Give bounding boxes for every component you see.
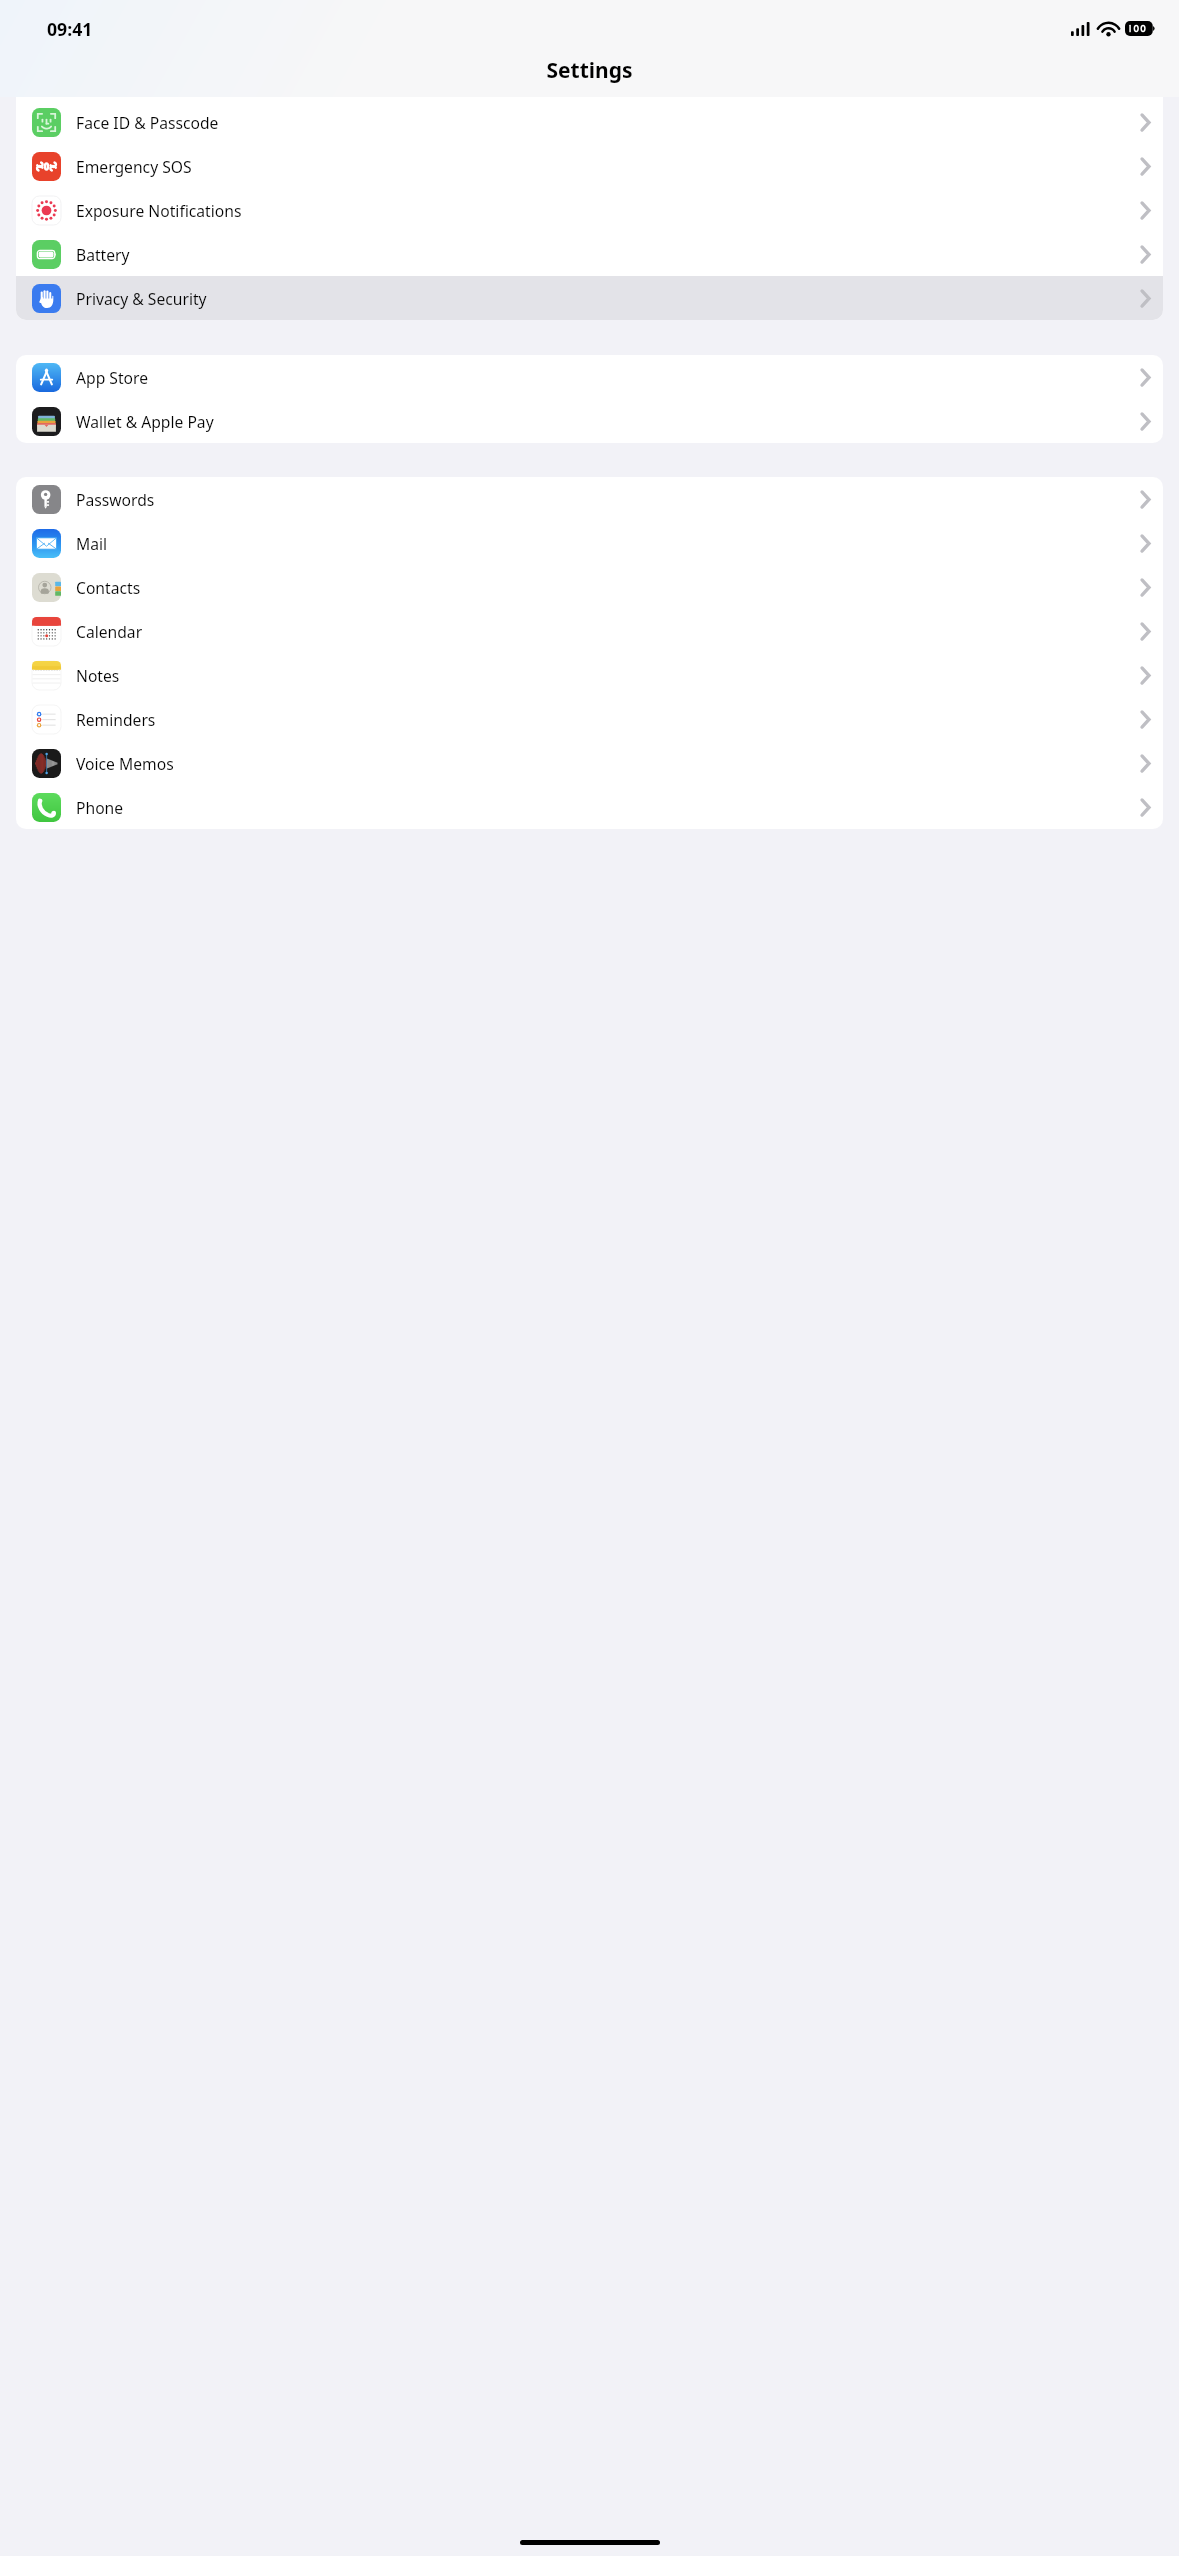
other: Exposure Notifications — [1140, 201, 1151, 220]
other: Privacy & Security — [1140, 289, 1151, 308]
staticText: Reminders — [76, 709, 156, 730]
staticText: Voice Memos — [76, 753, 174, 774]
button[interactable]: Privacy & Security — [16, 276, 1163, 320]
button[interactable]: Reminders — [16, 697, 1163, 741]
button[interactable]: Contacts — [16, 565, 1163, 609]
staticText: Passwords — [76, 489, 155, 510]
button[interactable]: Calendar — [16, 609, 1163, 653]
other: Mail — [1140, 534, 1151, 553]
button[interactable]: Passwords — [16, 477, 1163, 521]
button[interactable]: Face ID & Passcode — [16, 100, 1163, 144]
other: Face ID & Passcode — [1140, 113, 1151, 132]
other: Voice Memos — [1140, 754, 1151, 773]
staticText: Privacy & Security — [76, 288, 207, 309]
other: Reminders — [1140, 710, 1151, 729]
staticText: Contacts — [76, 577, 141, 598]
staticText: Emergency SOS — [76, 156, 192, 177]
button[interactable]: Wallet & Apple Pay — [16, 399, 1163, 443]
staticText: Exposure Notifications — [76, 200, 242, 221]
staticText: App Store — [76, 367, 149, 388]
staticText: Settings — [546, 56, 633, 85]
other: App Store — [1140, 368, 1151, 387]
button[interactable]: App Store — [16, 355, 1163, 399]
staticText: Notes — [76, 665, 120, 686]
other: Phone — [1140, 798, 1151, 817]
staticText: Phone — [76, 797, 124, 818]
staticText: Calendar — [76, 621, 143, 642]
button[interactable]: Mail — [16, 521, 1163, 565]
button[interactable]: Phone — [16, 785, 1163, 829]
other: Emergency SOS — [1140, 157, 1151, 176]
button[interactable]: Siri & Search — [16, 56, 1163, 100]
other: Calendar — [1140, 622, 1151, 641]
other: Contacts — [1140, 578, 1151, 597]
other: Wallet & Apple Pay — [1140, 412, 1151, 431]
staticText: Face ID & Passcode — [76, 112, 219, 133]
button[interactable]: Emergency SOS — [16, 144, 1163, 188]
button[interactable]: Notes — [16, 653, 1163, 697]
other: Battery — [1140, 245, 1151, 264]
staticText: Mail — [76, 533, 108, 554]
button[interactable]: Battery — [16, 232, 1163, 276]
button[interactable]: Voice Memos — [16, 741, 1163, 785]
other: Passwords — [1140, 490, 1151, 509]
staticText: Wallet & Apple Pay — [76, 411, 214, 432]
staticText: Battery — [76, 244, 130, 265]
other: Notes — [1140, 666, 1151, 685]
button[interactable]: Exposure Notifications — [16, 188, 1163, 232]
staticText: 09:41 — [47, 17, 93, 41]
